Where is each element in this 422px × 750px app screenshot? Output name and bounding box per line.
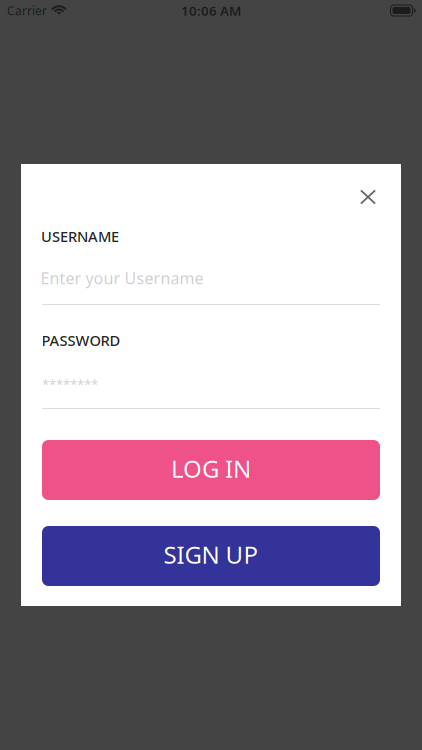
staticText: Enter your Username xyxy=(40,267,203,289)
staticText: Carrier xyxy=(7,2,47,18)
button[interactable]: SIGN UP xyxy=(42,526,380,586)
staticText: SIGN UP xyxy=(163,539,258,570)
staticText: 10:06 AM xyxy=(181,2,241,19)
staticText: PASSWORD xyxy=(41,330,120,350)
button[interactable]: LOG IN xyxy=(42,440,380,500)
staticText: ******** xyxy=(42,375,98,393)
button[interactable]: Close xyxy=(346,175,390,219)
staticText: USERNAME xyxy=(41,226,119,246)
staticText: LOG IN xyxy=(171,453,251,484)
